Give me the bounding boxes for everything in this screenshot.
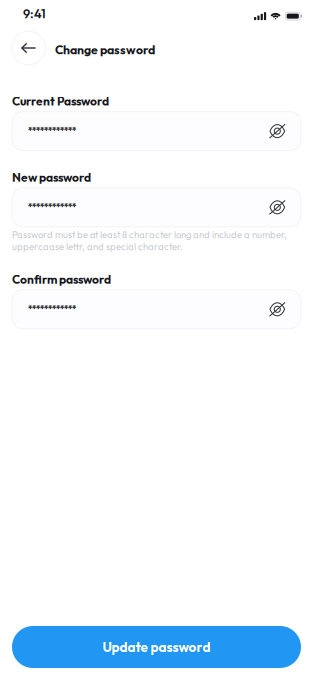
staticText: New password	[12, 170, 91, 185]
staticText: ************	[28, 125, 76, 137]
staticText: ************	[28, 202, 76, 213]
button[interactable]: Back	[12, 31, 45, 65]
staticText: Change password	[55, 42, 155, 58]
staticText: Password must be at least 8 character lo…	[12, 229, 287, 241]
staticText: uppercaase lettr, and special character.	[12, 241, 183, 253]
staticText: Current Password	[12, 93, 109, 109]
staticText: ************	[28, 304, 76, 315]
button[interactable]: Show password	[269, 124, 285, 138]
staticText: Confirm password	[12, 272, 111, 287]
staticText: Update password	[102, 638, 210, 655]
staticText: 9:41	[23, 5, 46, 21]
button[interactable]: Update password	[12, 626, 301, 668]
button[interactable]: Show password	[269, 302, 285, 316]
button[interactable]: Show password	[269, 200, 285, 214]
